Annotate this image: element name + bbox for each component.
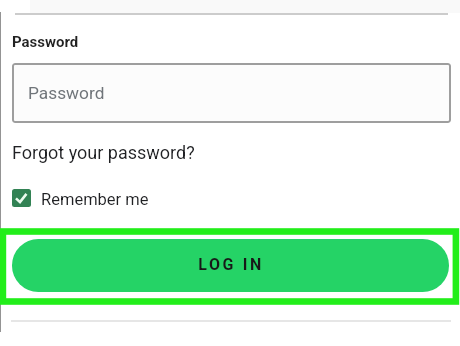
button[interactable]: Password (12, 63, 451, 123)
other: Remember me checkbox (12, 189, 31, 207)
button[interactable]: Remember me checkbox (12, 189, 149, 208)
button[interactable]: LOG IN (12, 239, 449, 292)
staticText: Password (28, 83, 105, 103)
staticText: Remember me (41, 190, 149, 209)
staticText: LOG IN (198, 255, 264, 274)
staticText: Password (12, 33, 79, 51)
staticText: Forgot your password? (12, 142, 195, 163)
button[interactable]: Forgot your password? (12, 142, 195, 163)
